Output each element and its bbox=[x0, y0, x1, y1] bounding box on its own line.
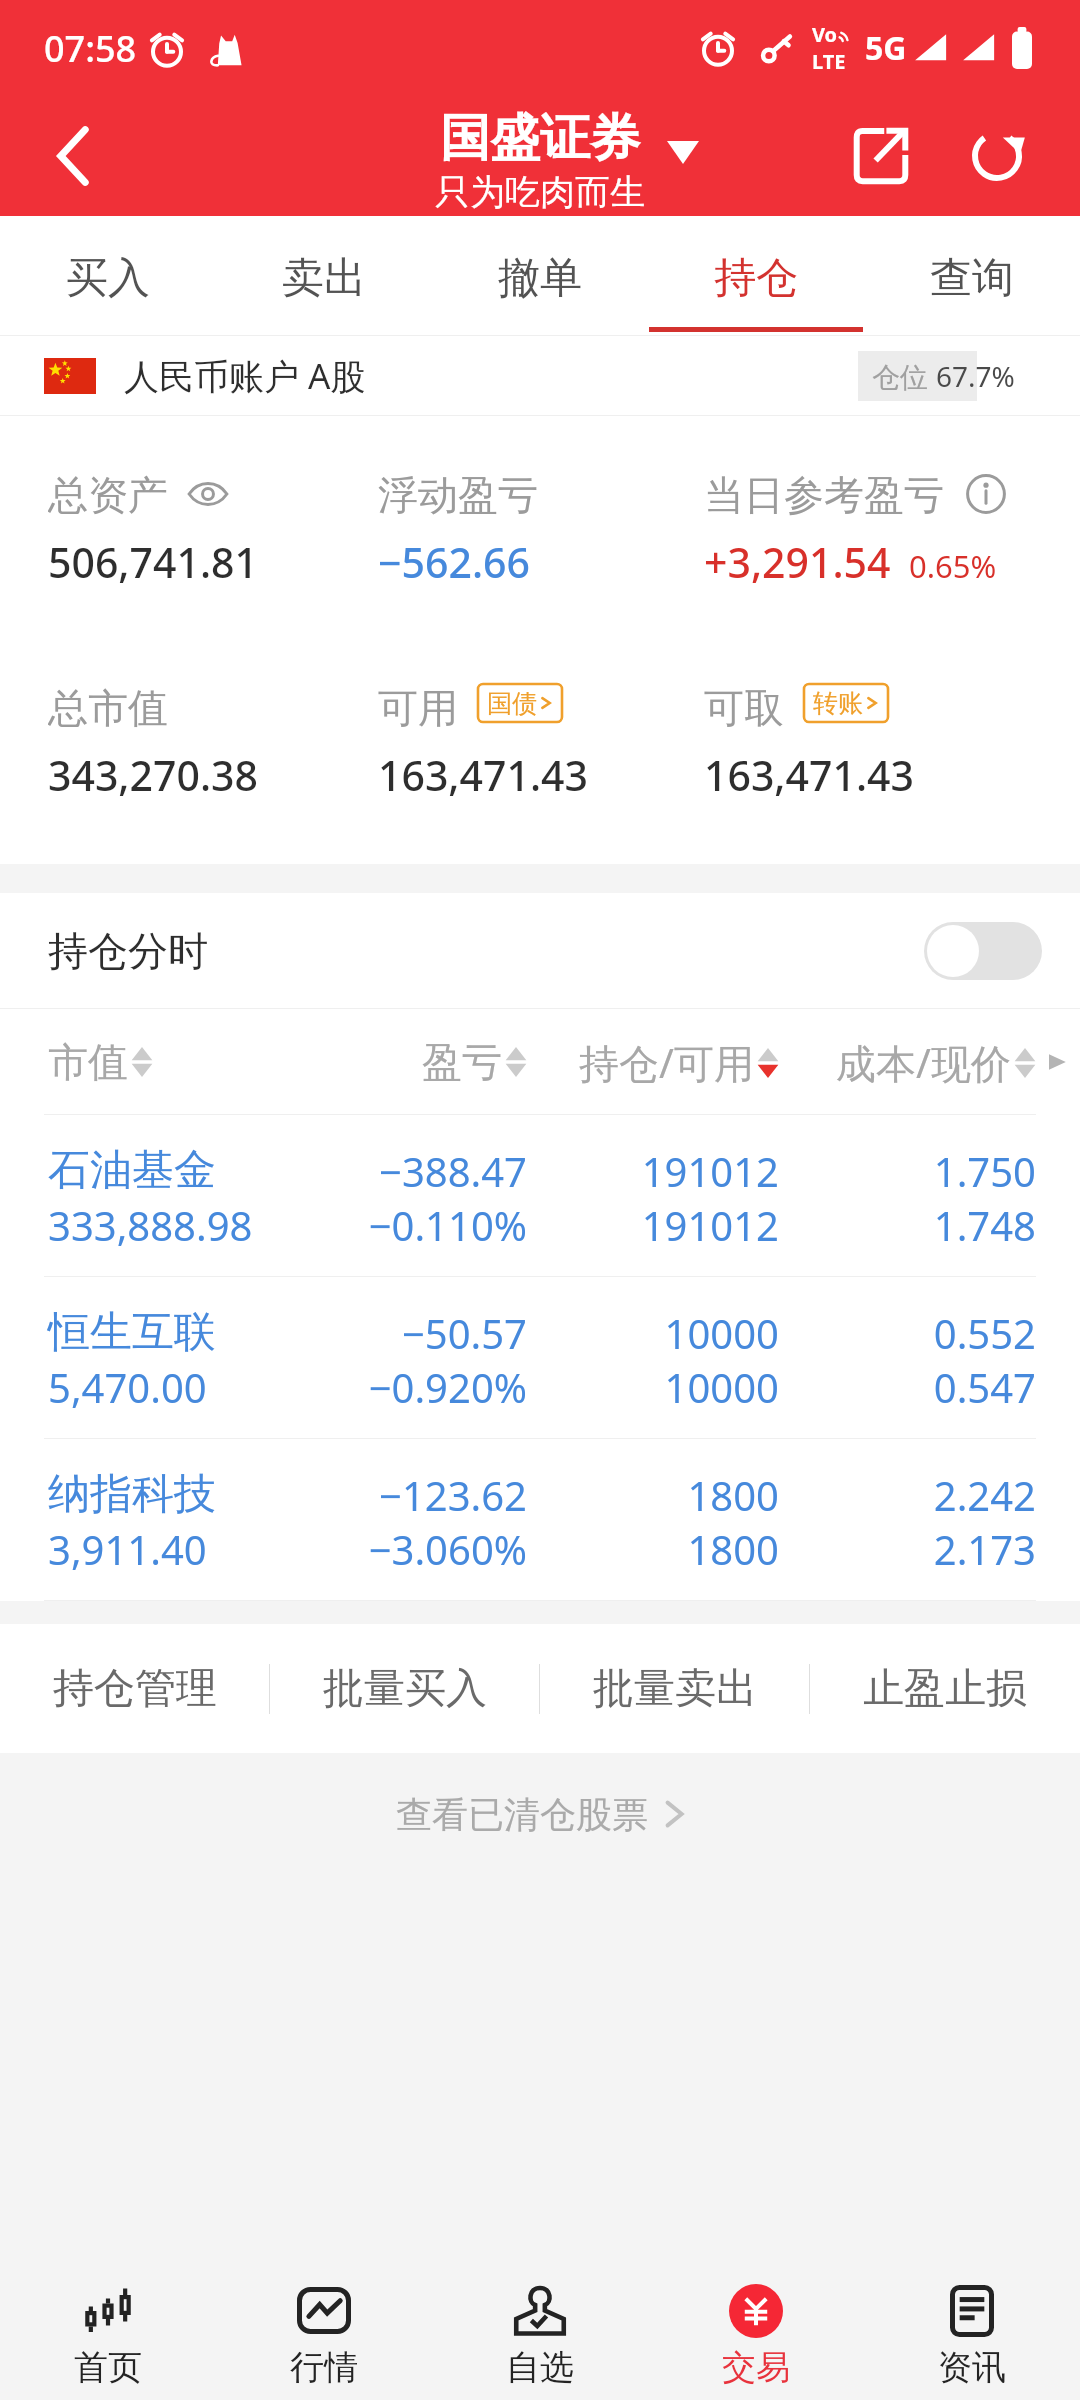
staticText: 买入 bbox=[66, 252, 150, 305]
staticText: Vo bbox=[812, 21, 838, 48]
staticText: 市值 bbox=[48, 1037, 128, 1087]
staticText: +3,291.54 bbox=[704, 534, 891, 590]
button[interactable]: 转账 bbox=[813, 684, 879, 722]
staticText: 止盈止损 bbox=[863, 1663, 1027, 1715]
button[interactable]: 批量买入 bbox=[270, 1624, 540, 1753]
staticText: 总资产 bbox=[48, 470, 168, 518]
staticText: 2.242 bbox=[779, 1468, 1036, 1522]
staticText: 163,471.43 bbox=[704, 747, 914, 803]
staticText: 国债 bbox=[487, 688, 537, 719]
button[interactable]: 卖出 bbox=[216, 216, 432, 336]
staticText: 1800 bbox=[527, 1468, 779, 1522]
button[interactable]: 仓位 bbox=[858, 351, 1034, 401]
button[interactable]: 资讯 bbox=[864, 2230, 1080, 2400]
staticText: 交易 bbox=[722, 2346, 790, 2389]
staticText: 行情 bbox=[290, 2346, 358, 2389]
staticText: 67.7% bbox=[936, 357, 1015, 395]
staticText: 343,270.38 bbox=[48, 747, 258, 803]
button[interactable]: Info bbox=[964, 472, 1008, 516]
button[interactable]: 恒生互联 bbox=[0, 1277, 1080, 1439]
staticText: 5,470.00 bbox=[48, 1360, 338, 1414]
staticText: 持仓管理 bbox=[53, 1663, 217, 1715]
staticText: 石油基金 bbox=[48, 1144, 338, 1197]
staticText: 自选 bbox=[506, 2346, 574, 2389]
staticText: 批量卖出 bbox=[593, 1663, 757, 1715]
staticText: 国盛证券 bbox=[440, 107, 640, 170]
staticText: −50.57 bbox=[338, 1306, 527, 1360]
staticText: 首页 bbox=[74, 2346, 142, 2389]
button[interactable]: 交易 bbox=[648, 2230, 864, 2400]
button[interactable]: 行情 bbox=[216, 2230, 432, 2400]
staticText: LTE bbox=[812, 48, 846, 75]
button[interactable]: 石油基金 bbox=[0, 1115, 1080, 1277]
staticText: 191012 bbox=[527, 1198, 779, 1252]
staticText: 3,911.40 bbox=[48, 1522, 338, 1576]
staticText: −123.62 bbox=[338, 1468, 527, 1522]
staticText: 0.547 bbox=[779, 1360, 1036, 1414]
staticText: 持仓分时 bbox=[48, 926, 208, 976]
staticText: 盈亏 bbox=[422, 1037, 502, 1087]
button[interactable]: 自选 bbox=[432, 2230, 648, 2400]
staticText: 5G bbox=[865, 26, 907, 70]
button[interactable]: 持仓管理 bbox=[0, 1624, 270, 1753]
staticText: 1800 bbox=[527, 1522, 779, 1576]
staticText: −3.060% bbox=[338, 1522, 527, 1576]
staticText: 批量买入 bbox=[323, 1663, 487, 1715]
button[interactable]: Back bbox=[0, 96, 146, 216]
staticText: 持仓/可用 bbox=[579, 1035, 754, 1090]
button[interactable]: 买入 bbox=[0, 216, 216, 336]
button[interactable]: 市值 bbox=[48, 1037, 338, 1087]
button[interactable]: 国债 bbox=[487, 684, 553, 722]
staticText: 可用 bbox=[378, 683, 458, 731]
staticText: 2.173 bbox=[779, 1522, 1036, 1576]
staticText: 只为吃肉而生 bbox=[435, 170, 645, 214]
button[interactable]: 查询 bbox=[864, 216, 1080, 336]
staticText: 查询 bbox=[930, 252, 1014, 305]
staticText: 成本/现价 bbox=[836, 1035, 1011, 1090]
staticText: 仓位 bbox=[872, 357, 936, 395]
button[interactable]: 人民币账户 A股 bbox=[44, 336, 1034, 416]
button[interactable]: 成本/现价 bbox=[836, 1035, 1036, 1090]
staticText: 资讯 bbox=[938, 2346, 1006, 2389]
button[interactable]: More columns bbox=[1040, 1032, 1074, 1092]
staticText: −388.47 bbox=[338, 1144, 527, 1198]
staticText: 浮动盈亏 bbox=[378, 470, 538, 518]
staticText: 0.552 bbox=[779, 1306, 1036, 1360]
button[interactable]: 纳指科技 bbox=[0, 1439, 1080, 1601]
staticText: 当日参考盈亏 bbox=[704, 470, 944, 518]
button[interactable]: 盈亏 bbox=[422, 1037, 527, 1087]
staticText: 人民币账户 A股 bbox=[124, 352, 366, 400]
staticText: 恒生互联 bbox=[48, 1306, 338, 1359]
button[interactable]: 持仓/可用 bbox=[579, 1035, 779, 1090]
staticText: 纳指科技 bbox=[48, 1468, 338, 1521]
button[interactable]: 止盈止损 bbox=[810, 1624, 1080, 1753]
button[interactable]: 批量卖出 bbox=[540, 1624, 810, 1753]
button[interactable]: 持仓 bbox=[648, 216, 864, 336]
button[interactable]: Refresh bbox=[940, 106, 1054, 206]
staticText: 10000 bbox=[527, 1360, 779, 1414]
staticText: 可取 bbox=[704, 683, 784, 731]
staticText: 卖出 bbox=[282, 252, 366, 305]
staticText: 查看已清仓股票 bbox=[396, 1792, 648, 1837]
button[interactable]: Share bbox=[824, 106, 938, 206]
button[interactable]: 撤单 bbox=[432, 216, 648, 336]
button[interactable]: 首页 bbox=[0, 2230, 216, 2400]
button[interactable]: 查看已清仓股票 bbox=[0, 1754, 1080, 1874]
staticText: −0.920% bbox=[338, 1360, 527, 1414]
staticText: 07:58 bbox=[44, 24, 137, 73]
staticText: 10000 bbox=[527, 1306, 779, 1360]
staticText: −562.66 bbox=[378, 534, 530, 590]
staticText: 163,471.43 bbox=[378, 747, 588, 803]
staticText: 506,741.81 bbox=[48, 534, 258, 590]
staticText: 转账 bbox=[813, 688, 863, 719]
staticText: 1.748 bbox=[779, 1198, 1036, 1252]
staticText: 1.750 bbox=[779, 1144, 1036, 1198]
staticText: −0.110% bbox=[338, 1198, 527, 1252]
staticText: 总市值 bbox=[48, 683, 168, 731]
button[interactable]: 持仓分时 toggle bbox=[924, 922, 1042, 980]
button[interactable]: Hide balance bbox=[186, 472, 230, 516]
staticText: 191012 bbox=[527, 1144, 779, 1198]
staticText: 0.65% bbox=[909, 545, 997, 587]
staticText: 333,888.98 bbox=[48, 1198, 338, 1252]
staticText: 持仓 bbox=[714, 252, 798, 305]
